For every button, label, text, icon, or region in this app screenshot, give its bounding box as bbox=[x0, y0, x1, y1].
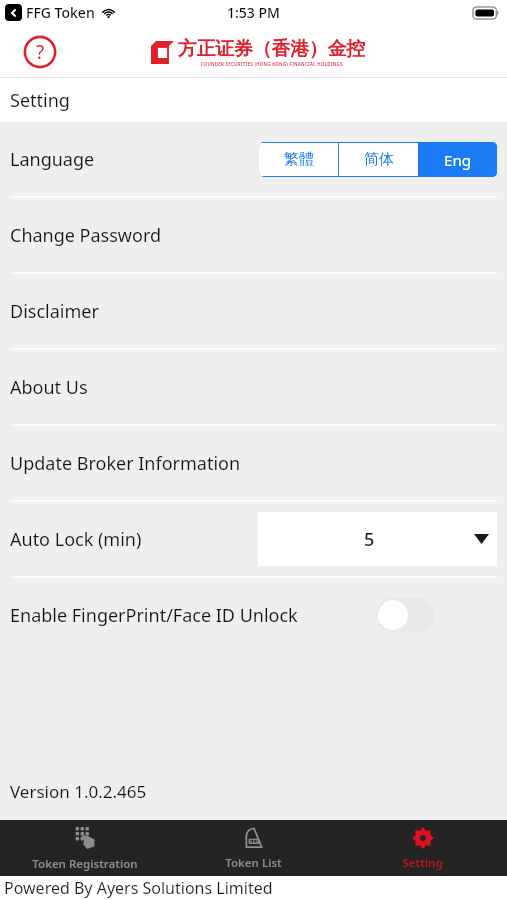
staticText: About Us bbox=[10, 375, 88, 400]
staticText: Disclaimer bbox=[10, 299, 99, 324]
staticText: Auto Lock (min) bbox=[10, 527, 142, 552]
staticText: Eng bbox=[444, 150, 471, 170]
button[interactable]: About Us bbox=[0, 350, 507, 424]
staticText: Change Password bbox=[10, 223, 162, 248]
button[interactable]: 5 bbox=[258, 512, 497, 566]
staticText: Version 1.0.2.465 bbox=[10, 780, 147, 803]
staticText: 5 bbox=[364, 527, 375, 552]
button[interactable]: Disclaimer bbox=[0, 274, 507, 348]
staticText: 1:53 PM bbox=[227, 3, 280, 22]
button[interactable]: Update Broker Information bbox=[0, 426, 507, 500]
staticText: Powered By Ayers Solutions Limited bbox=[4, 877, 273, 899]
staticText: Enable FingerPrint/Face ID Unlock bbox=[10, 603, 298, 628]
staticText: Token List bbox=[225, 855, 282, 871]
staticText: 方正证券（香港）金控 bbox=[178, 37, 365, 61]
staticText: 繁體 bbox=[284, 150, 314, 169]
button[interactable]: 简体 bbox=[339, 143, 418, 176]
button[interactable]: Change Password bbox=[0, 198, 507, 272]
staticText: ? bbox=[36, 39, 45, 65]
staticText: Language bbox=[10, 147, 95, 172]
staticText: Update Broker Information bbox=[10, 451, 241, 476]
staticText: FFG Token bbox=[26, 3, 95, 22]
button[interactable]: Token List bbox=[169, 820, 338, 876]
staticText: FOUNDER SECURITIES (HONG KONG) FINANCIAL… bbox=[201, 61, 343, 67]
staticText: Token Registration bbox=[32, 856, 138, 872]
button[interactable]: 繁體 bbox=[259, 143, 338, 176]
staticText: 简体 bbox=[364, 150, 394, 169]
button[interactable]: Token Registration bbox=[0, 820, 169, 876]
staticText: Setting bbox=[402, 855, 443, 871]
staticText: Setting bbox=[10, 88, 70, 113]
button[interactable]: Help bbox=[22, 34, 58, 70]
button[interactable]: Setting bbox=[338, 820, 507, 876]
button[interactable]: Enable FingerPrint or Face ID Unlock bbox=[376, 598, 434, 632]
button[interactable]: Eng bbox=[418, 142, 497, 177]
